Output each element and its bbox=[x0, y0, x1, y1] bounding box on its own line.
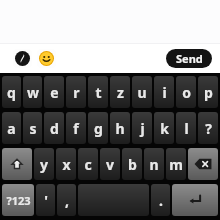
button[interactable]: s bbox=[23, 112, 42, 144]
button[interactable]: f bbox=[66, 112, 86, 144]
staticText: s bbox=[29, 119, 37, 138]
button[interactable]: w bbox=[23, 76, 42, 108]
staticText: g bbox=[94, 119, 103, 138]
button[interactable]: v bbox=[100, 148, 120, 180]
button[interactable]: Shift bbox=[2, 148, 32, 180]
staticText: x bbox=[62, 155, 71, 174]
button[interactable]: ' bbox=[36, 184, 55, 216]
staticText: a bbox=[7, 119, 16, 138]
button[interactable]: ?123 bbox=[2, 184, 34, 216]
button[interactable]: k bbox=[154, 112, 174, 144]
staticText: t bbox=[95, 83, 102, 102]
staticText: z bbox=[117, 83, 124, 102]
button[interactable]: Voice input bbox=[13, 49, 32, 68]
staticText: d bbox=[50, 119, 59, 138]
staticText: k bbox=[160, 119, 169, 138]
staticText: u bbox=[137, 83, 147, 102]
staticText: q bbox=[7, 83, 16, 102]
button[interactable]: q bbox=[2, 76, 21, 108]
staticText: i bbox=[162, 83, 167, 102]
staticText: c bbox=[84, 155, 92, 174]
staticText: ?123 bbox=[6, 193, 31, 208]
button[interactable]: Send bbox=[166, 49, 212, 68]
button[interactable]: . bbox=[151, 184, 170, 216]
staticText: ? bbox=[205, 119, 212, 138]
staticText: o bbox=[182, 83, 191, 102]
button[interactable]: m bbox=[166, 148, 186, 180]
staticText: l bbox=[184, 119, 189, 138]
staticText: e bbox=[50, 83, 59, 102]
staticText: b bbox=[128, 155, 137, 174]
staticText: r bbox=[73, 83, 80, 102]
staticText: h bbox=[115, 119, 125, 138]
staticText: . bbox=[159, 191, 163, 210]
staticText: v bbox=[106, 155, 114, 174]
button[interactable]: x bbox=[56, 148, 76, 180]
button[interactable]: , bbox=[57, 184, 76, 216]
button[interactable]: e bbox=[44, 76, 64, 108]
staticText: j bbox=[140, 119, 145, 138]
button[interactable]: j bbox=[132, 112, 152, 144]
button[interactable]: u bbox=[132, 76, 152, 108]
staticText: w bbox=[27, 83, 39, 102]
staticText: , bbox=[65, 191, 69, 210]
button[interactable]: r bbox=[66, 76, 86, 108]
button[interactable]: o bbox=[176, 76, 196, 108]
staticText: y bbox=[40, 155, 48, 174]
staticText: p bbox=[204, 83, 213, 102]
button[interactable]: Backspace bbox=[188, 148, 218, 180]
staticText: n bbox=[149, 155, 159, 174]
button[interactable]: Emoji bbox=[37, 49, 56, 68]
button[interactable]: p bbox=[198, 76, 218, 108]
button[interactable]: t bbox=[88, 76, 108, 108]
button[interactable]: Space bbox=[78, 184, 149, 216]
button[interactable]: Enter bbox=[172, 184, 218, 216]
button[interactable]: d bbox=[44, 112, 64, 144]
button[interactable]: b bbox=[122, 148, 142, 180]
staticText: f bbox=[73, 119, 79, 138]
button[interactable]: y bbox=[34, 148, 54, 180]
button[interactable]: i bbox=[154, 76, 174, 108]
button[interactable]: ? bbox=[198, 112, 218, 144]
button[interactable]: c bbox=[78, 148, 98, 180]
staticText: ' bbox=[44, 191, 48, 210]
button[interactable]: h bbox=[110, 112, 130, 144]
button[interactable]: l bbox=[176, 112, 196, 144]
staticText: m bbox=[169, 155, 183, 174]
staticText: Send bbox=[176, 51, 203, 66]
button[interactable]: g bbox=[88, 112, 108, 144]
button[interactable]: n bbox=[144, 148, 164, 180]
button[interactable]: a bbox=[2, 112, 21, 144]
button[interactable]: z bbox=[110, 76, 130, 108]
